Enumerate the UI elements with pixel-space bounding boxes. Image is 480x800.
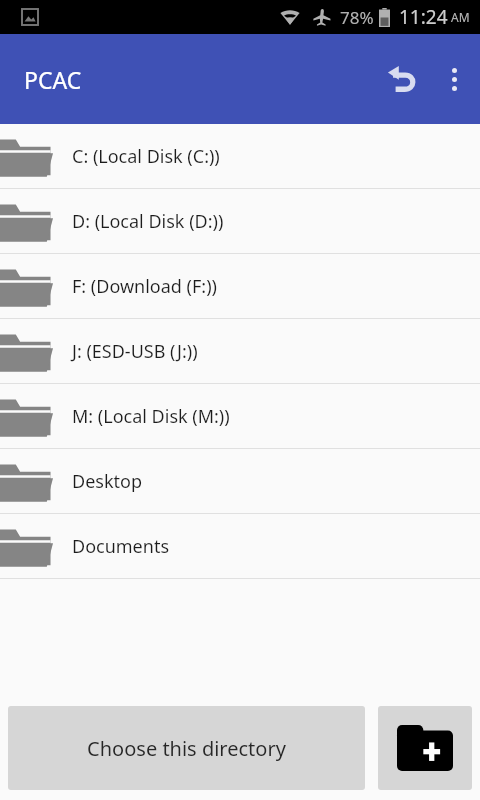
staticText: 11:24 [399, 4, 448, 30]
button[interactable]: Desktop [0, 449, 480, 513]
staticText: Desktop [72, 469, 142, 494]
staticText: 78% [340, 6, 374, 29]
button[interactable]: Back [376, 53, 428, 105]
staticText: PCAC [24, 64, 82, 95]
staticText: Documents [72, 534, 170, 559]
button[interactable]: Choose this directory [8, 706, 365, 790]
button[interactable]: Create new folder [378, 706, 472, 790]
staticText: D: (Local Disk (D:)) [72, 209, 224, 234]
staticText: M: (Local Disk (M:)) [72, 404, 230, 429]
button[interactable]: More options [428, 53, 480, 105]
staticText: J: (ESD-USB (J:)) [72, 339, 198, 364]
button[interactable]: D: (Local Disk (D:)) [0, 189, 480, 253]
staticText: C: (Local Disk (C:)) [72, 144, 220, 169]
button[interactable]: C: (Local Disk (C:)) [0, 124, 480, 188]
staticText: AM [451, 9, 470, 25]
button[interactable]: Documents [0, 514, 480, 578]
button[interactable]: M: (Local Disk (M:)) [0, 384, 480, 448]
staticText: Choose this directory [87, 735, 286, 762]
staticText: F: (Download (F:)) [72, 274, 217, 299]
button[interactable]: F: (Download (F:)) [0, 254, 480, 318]
button[interactable]: J: (ESD-USB (J:)) [0, 319, 480, 383]
